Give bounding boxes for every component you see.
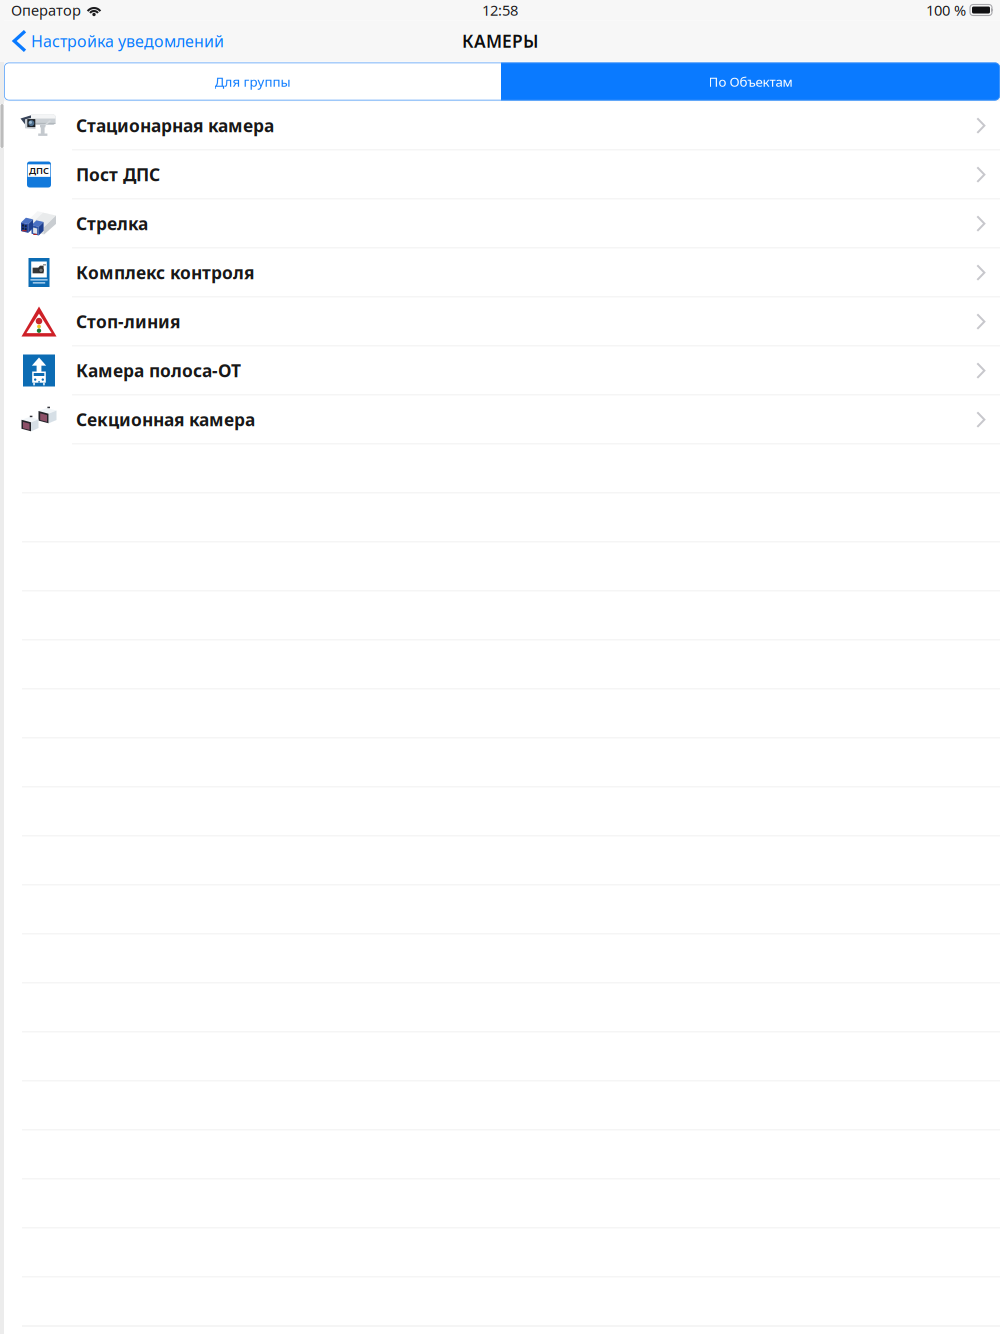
staticText: Стационарная камера (76, 114, 274, 137)
staticText: КАМЕРЫ (462, 29, 538, 52)
staticText: Комплекс контроля (76, 261, 254, 284)
staticText: Камера полоса-ОТ (76, 359, 241, 382)
staticText: Стоп-линия (76, 310, 180, 333)
staticText: Стрелка (76, 212, 148, 235)
staticText: Для группы (214, 73, 290, 90)
button[interactable]: Настройка уведомлений (0, 24, 224, 57)
staticText: Пост ДПС (76, 163, 160, 186)
staticText: 12:58 (482, 0, 518, 20)
staticText: Оператор (11, 0, 81, 20)
button[interactable]: Комплекс контроля (0, 248, 1000, 297)
staticText: 100 % (926, 0, 966, 20)
button[interactable]: По Объектам (501, 62, 1000, 100)
button[interactable]: Стрелка (0, 199, 1000, 248)
staticText: Секционная камера (76, 408, 255, 431)
button[interactable]: ДПС (0, 150, 1000, 199)
button[interactable]: Для группы (4, 62, 501, 100)
staticText: По Объектам (708, 73, 792, 90)
button[interactable]: Стационарная камера (0, 101, 1000, 150)
staticText: Настройка уведомлений (31, 30, 224, 52)
button[interactable]: Секционная камера (0, 395, 1000, 444)
staticText: ДПС (29, 164, 49, 177)
button[interactable]: Камера полоса-ОТ (0, 346, 1000, 395)
button[interactable]: Стоп-линия (0, 297, 1000, 346)
